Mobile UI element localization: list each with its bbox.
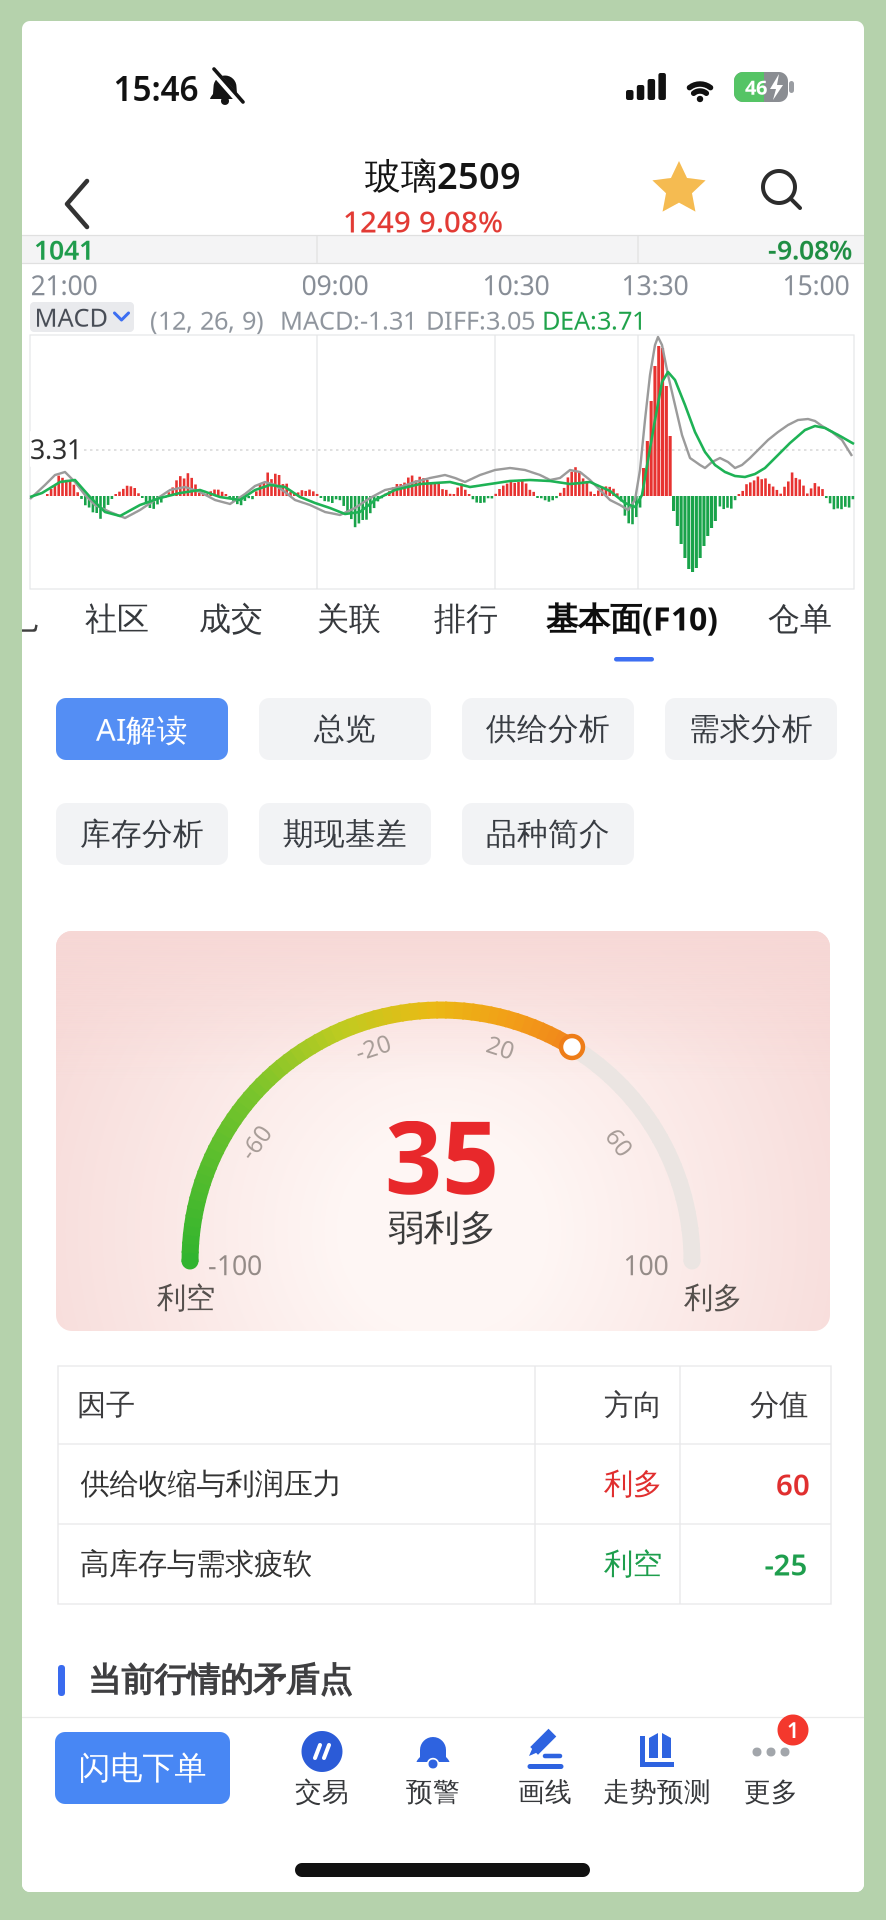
staticText: 60 — [776, 1464, 810, 1503]
button[interactable]: Favorite — [651, 161, 707, 217]
button[interactable]: Back — [57, 173, 101, 235]
staticText: 13:30 — [621, 267, 688, 303]
button[interactable]: 画线 — [495, 1730, 595, 1816]
button[interactable]: 更多 — [721, 1730, 821, 1816]
staticText: DEA:3.71 — [542, 303, 646, 337]
staticText: 走势预测 — [603, 1776, 711, 1808]
staticText: 20 — [487, 1031, 515, 1063]
staticText: 1 — [787, 1716, 799, 1744]
staticText: 15:00 — [782, 267, 849, 303]
staticText: 仓单 — [768, 599, 832, 639]
staticText: 100 — [623, 1247, 668, 1283]
staticText: 09:00 — [301, 267, 368, 303]
staticText: DIFF:3.05 — [426, 303, 535, 337]
button[interactable]: Search — [754, 162, 808, 216]
staticText: 方向 — [604, 1387, 662, 1423]
staticText: 10:30 — [482, 267, 549, 303]
staticText: 利空 — [604, 1546, 662, 1582]
staticText: 需求分析 — [689, 710, 813, 748]
staticText: 乚 — [6, 599, 38, 639]
staticText: 21:00 — [30, 267, 97, 303]
staticText: -60 — [237, 1126, 273, 1158]
staticText: 因子 — [77, 1387, 135, 1423]
staticText: 35 — [385, 1089, 499, 1221]
button[interactable]: MACD indicator selector — [30, 302, 134, 332]
button[interactable]: 社区 — [85, 599, 149, 639]
staticText: (12, 26, 9) — [150, 303, 264, 337]
staticText: 供给收缩与利润压力 — [80, 1466, 341, 1502]
staticText: 关联 — [317, 599, 381, 639]
button[interactable]: 走势预测 — [607, 1730, 707, 1816]
staticText: 当前行情的矛盾点 — [88, 1659, 352, 1700]
staticText: 画线 — [518, 1776, 572, 1808]
staticText: 弱利多 — [388, 1206, 496, 1250]
button[interactable]: 交易 — [272, 1730, 372, 1816]
button[interactable]: 库存分析 — [56, 803, 228, 865]
staticText: 利空 — [157, 1280, 215, 1316]
staticText: 品种简介 — [486, 815, 610, 853]
staticText: 1041 — [34, 232, 94, 267]
staticText: 总览 — [314, 710, 376, 748]
staticText: 高库存与需求疲软 — [80, 1546, 312, 1582]
button[interactable]: 仓单 — [768, 599, 832, 639]
staticText: 闪电下单 — [78, 1748, 206, 1788]
button[interactable]: 品种简介 — [462, 803, 634, 865]
button[interactable]: 闪电下单 — [55, 1732, 230, 1804]
staticText: MACD:-1.31 — [280, 303, 417, 337]
staticText: 基本面(F10) — [546, 597, 718, 639]
staticText: 更多 — [744, 1776, 798, 1808]
button[interactable]: 关联 — [317, 599, 381, 639]
staticText: 分值 — [750, 1387, 808, 1423]
button[interactable]: 基本面(F10) — [546, 597, 718, 639]
staticText: -20 — [355, 1031, 391, 1063]
staticText: 1249 9.08% — [343, 201, 503, 240]
button[interactable]: 排行 — [434, 599, 498, 639]
staticText: 利多 — [604, 1466, 662, 1502]
staticText: -9.08% — [768, 232, 852, 267]
staticText: 46 — [745, 74, 767, 100]
staticText: MACD — [34, 300, 107, 334]
staticText: 排行 — [434, 599, 498, 639]
staticText: -25 — [764, 1544, 807, 1583]
staticText: 期现基差 — [283, 815, 407, 853]
button[interactable]: 供给分析 — [462, 698, 634, 760]
staticText: 60 — [606, 1126, 634, 1158]
staticText: 库存分析 — [80, 815, 204, 853]
staticText: 交易 — [295, 1776, 349, 1808]
staticText: 玻璃2509 — [365, 151, 521, 199]
button[interactable]: 预警 — [383, 1730, 483, 1816]
staticText: 成交 — [199, 599, 263, 639]
staticText: -100 — [208, 1247, 262, 1283]
staticText: 预警 — [406, 1776, 460, 1808]
staticText: 利多 — [684, 1280, 742, 1316]
staticText: 社区 — [85, 599, 149, 639]
staticText: 3.31 — [30, 431, 82, 467]
button[interactable]: 需求分析 — [665, 698, 837, 760]
button[interactable]: 成交 — [199, 599, 263, 639]
button[interactable]: 期现基差 — [259, 803, 431, 865]
button[interactable]: AI解读 — [56, 698, 228, 760]
staticText: AI解读 — [96, 709, 188, 749]
button[interactable]: 总览 — [259, 698, 431, 760]
staticText: 15:46 — [113, 66, 198, 110]
staticText: 供给分析 — [486, 710, 610, 748]
